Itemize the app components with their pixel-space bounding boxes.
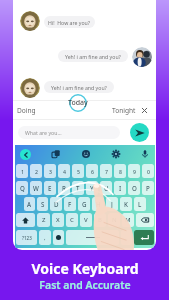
staticText: Voice Keyboard — [31, 259, 139, 278]
button[interactable] — [20, 11, 40, 31]
button[interactable]: K — [120, 197, 132, 211]
button[interactable]: Emoji — [80, 148, 92, 160]
button[interactable]: 4 — [58, 164, 70, 178]
button[interactable]: X — [52, 213, 64, 227]
button[interactable]: J — [106, 197, 118, 211]
staticText: 0 — [147, 168, 150, 175]
staticText: O — [132, 184, 137, 192]
staticText: What are you... — [25, 129, 62, 136]
button[interactable]: Shift — [16, 213, 35, 227]
button[interactable]: F — [64, 197, 76, 211]
button[interactable]: Z — [37, 213, 50, 227]
button[interactable]: Voice input — [139, 148, 151, 160]
button[interactable]: H — [92, 197, 104, 211]
button[interactable]: Space — [66, 230, 119, 245]
button[interactable]: Settings — [110, 148, 122, 160]
button[interactable]: 3 — [44, 164, 56, 178]
staticText: A — [27, 200, 32, 208]
button[interactable]: Emoji keyboard — [53, 230, 64, 245]
button[interactable] — [132, 47, 152, 67]
button[interactable]: P — [142, 181, 154, 195]
button[interactable]: O — [128, 181, 140, 195]
button[interactable]: 5 — [72, 164, 84, 178]
button[interactable]: . — [121, 230, 132, 245]
button[interactable]: Close — [140, 106, 149, 115]
staticText: 4 — [63, 168, 66, 175]
button[interactable]: S — [37, 197, 48, 211]
button[interactable]: 7 — [100, 164, 112, 178]
button[interactable]: ?123 — [16, 230, 37, 245]
staticText: L — [138, 200, 142, 208]
staticText: 3 — [49, 168, 52, 175]
button[interactable] — [20, 78, 40, 98]
button[interactable]: T — [72, 181, 84, 195]
staticText: Q — [20, 184, 25, 192]
button[interactable]: B — [94, 213, 106, 227]
button[interactable]: Comma — [39, 230, 51, 245]
staticText: ?123 — [22, 235, 32, 241]
button[interactable]: 6 — [86, 164, 98, 178]
button[interactable]: 0 — [142, 164, 154, 178]
button[interactable]: G — [78, 197, 90, 211]
button[interactable]: E — [44, 181, 56, 195]
staticText: 8 — [119, 168, 122, 175]
button[interactable]: N — [108, 213, 120, 227]
staticText: I — [119, 184, 122, 192]
button[interactable]: Yeh! i am fine and you? — [58, 50, 128, 62]
button[interactable]: M — [122, 213, 134, 227]
button[interactable]: Backspace — [136, 213, 154, 227]
staticText: D — [54, 200, 59, 208]
button[interactable]: 8 — [114, 164, 126, 178]
staticText: R — [62, 184, 66, 192]
staticText: 7 — [105, 168, 108, 175]
staticText: , — [44, 234, 46, 242]
button[interactable]: L — [134, 197, 146, 211]
button[interactable]: D — [50, 197, 62, 211]
staticText: 5 — [77, 168, 80, 175]
staticText: Z — [42, 216, 46, 224]
staticText: 1 — [21, 168, 24, 175]
button[interactable]: 1 — [16, 164, 28, 178]
button[interactable]: W — [30, 181, 42, 195]
staticText: J — [111, 200, 113, 208]
button[interactable]: I — [114, 181, 126, 195]
button[interactable]: Y — [86, 181, 98, 195]
staticText: V — [84, 216, 88, 224]
staticText: 6 — [91, 168, 94, 175]
button[interactable]: What are you... — [18, 126, 120, 139]
staticText: 9 — [133, 168, 136, 175]
staticText: M — [125, 216, 131, 224]
button[interactable]: Enter — [134, 230, 154, 245]
button[interactable]: V — [80, 213, 92, 227]
staticText: T — [76, 184, 80, 192]
staticText: S — [41, 200, 45, 208]
button[interactable]: Hi! How are you? — [44, 16, 95, 28]
staticText: X — [56, 216, 60, 224]
button[interactable]: Doing — [17, 104, 36, 116]
staticText: Yeh! i am fine and you? — [65, 53, 121, 60]
staticText: W — [33, 184, 39, 192]
button[interactable]: Yeh! i am fine and you? — [44, 81, 114, 93]
staticText: Today — [68, 98, 88, 108]
button[interactable]: Today — [64, 94, 92, 112]
button[interactable]: 9 — [128, 164, 140, 178]
button[interactable]: U — [100, 181, 112, 195]
staticText: Yeh! i am fine and you? — [51, 84, 107, 91]
staticText: E — [48, 184, 52, 192]
button[interactable]: Send — [130, 123, 149, 142]
button[interactable]: 2 — [30, 164, 42, 178]
button[interactable]: Clipboard — [50, 148, 62, 160]
staticText: U — [104, 184, 109, 192]
staticText: Fast and Accurate — [39, 278, 131, 292]
button[interactable]: Tonight — [112, 104, 136, 116]
button[interactable]: A — [24, 197, 35, 211]
staticText: K — [124, 200, 128, 208]
staticText: Y — [90, 184, 94, 192]
button[interactable]: Q — [16, 181, 28, 195]
button[interactable]: R — [58, 181, 70, 195]
button[interactable]: Back — [20, 149, 31, 160]
button[interactable]: C — [66, 213, 78, 227]
